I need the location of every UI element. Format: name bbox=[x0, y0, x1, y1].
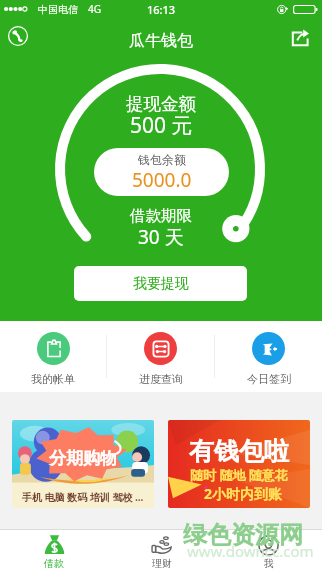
staticText: 随时 随地 随意花 bbox=[190, 466, 288, 484]
staticText: 30 天 bbox=[138, 224, 184, 250]
button[interactable]: 我要提现 bbox=[74, 266, 247, 301]
staticText: 我的帐单 bbox=[31, 372, 75, 386]
staticText: 我 bbox=[264, 557, 274, 570]
button[interactable]: 我 bbox=[215, 529, 322, 572]
staticText: 我要提现 bbox=[133, 275, 189, 293]
staticText: 理财 bbox=[152, 557, 172, 570]
button[interactable]: 分期购物 bbox=[12, 420, 154, 508]
staticText: 进度查询 bbox=[139, 372, 183, 386]
staticText: 16:13 bbox=[147, 2, 176, 17]
staticText: www.downcc.com bbox=[187, 541, 314, 561]
button[interactable]: 借款 bbox=[0, 529, 108, 572]
staticText: 钱包余额 bbox=[138, 152, 186, 167]
button[interactable]: 进度查询 bbox=[107, 321, 214, 392]
button[interactable]: 今日签到 bbox=[215, 321, 322, 392]
staticText: 手机 电脑 数码 培训 驾校 ... bbox=[22, 490, 144, 504]
staticText: 2小时内到账 bbox=[204, 484, 283, 503]
button[interactable]: 有钱包啦 bbox=[168, 420, 310, 508]
staticText: 瓜牛钱包 bbox=[129, 31, 193, 51]
staticText: 借款 bbox=[44, 557, 64, 570]
button[interactable]: Share bbox=[278, 16, 322, 60]
button[interactable]: 理财 bbox=[108, 529, 215, 572]
button[interactable]: Call service bbox=[0, 18, 35, 53]
staticText: 今日签到 bbox=[247, 372, 291, 386]
staticText: 有钱包啦 bbox=[189, 436, 289, 467]
staticText: 提现金额 bbox=[126, 93, 196, 115]
staticText: 绿色资源网 bbox=[183, 520, 303, 550]
staticText: 500 元 bbox=[130, 111, 193, 140]
button[interactable]: 我的帐单 bbox=[0, 321, 106, 392]
staticText: 5000.0 bbox=[132, 167, 192, 193]
staticText: 分期购物 bbox=[49, 448, 117, 469]
staticText: 4G bbox=[88, 2, 101, 16]
staticText: 中国电信 bbox=[38, 3, 78, 16]
staticText: 借款期限 bbox=[130, 206, 192, 226]
